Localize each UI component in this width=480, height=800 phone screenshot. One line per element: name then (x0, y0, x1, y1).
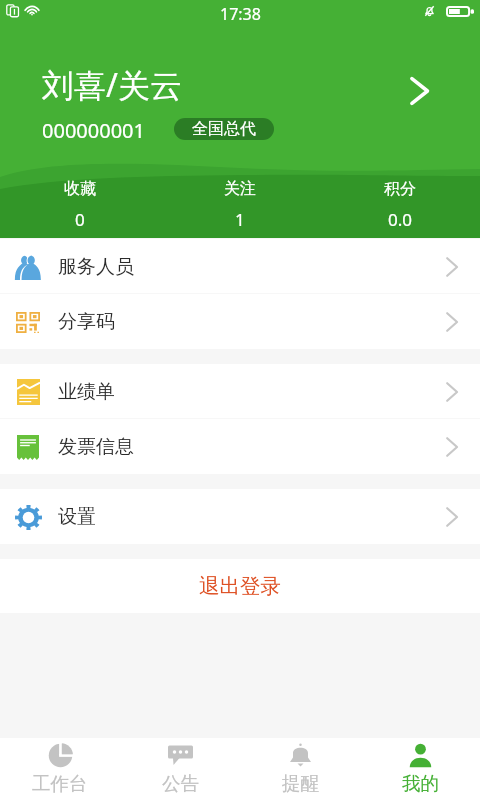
staticText: 工作台 (32, 772, 88, 795)
staticText: 全国总代 (192, 119, 256, 139)
staticText: 业绩单 (58, 380, 115, 404)
button[interactable]: 关注 (160, 179, 320, 231)
staticText: 收藏 (64, 179, 96, 199)
button[interactable]: 设置 (0, 489, 480, 544)
button[interactable]: 积分 (320, 179, 480, 231)
staticText: 我的 (402, 772, 439, 795)
button[interactable]: 全国总代 (174, 118, 274, 140)
staticText: 发票信息 (58, 435, 134, 459)
button[interactable]: 公告 (120, 738, 240, 800)
button[interactable]: 收藏 (0, 179, 160, 231)
button[interactable]: 服务人员 (0, 239, 480, 294)
button[interactable]: 发票信息 (0, 419, 480, 474)
staticText: 服务人员 (58, 255, 134, 279)
button[interactable]: 我的 (360, 738, 480, 800)
button[interactable]: 分享码 (0, 294, 480, 349)
staticText: 刘喜/关云 (42, 63, 182, 107)
staticText: 000000001 (42, 117, 145, 144)
staticText: 分享码 (58, 310, 115, 334)
staticText: 积分 (384, 179, 416, 199)
staticText: 设置 (58, 505, 96, 529)
button[interactable]: Profile details (400, 68, 438, 114)
button[interactable]: 退出登录 (0, 559, 480, 613)
staticText: 退出登录 (199, 573, 281, 599)
staticText: 0 (75, 208, 85, 231)
staticText: 公告 (162, 772, 199, 795)
staticText: 提醒 (282, 772, 319, 795)
button[interactable]: 提醒 (240, 738, 360, 800)
button[interactable]: 业绩单 (0, 364, 480, 419)
staticText: 17:38 (220, 3, 261, 25)
staticText: 0.0 (388, 208, 413, 231)
staticText: 关注 (224, 179, 256, 199)
button[interactable]: 工作台 (0, 738, 120, 800)
staticText: 1 (235, 208, 245, 231)
